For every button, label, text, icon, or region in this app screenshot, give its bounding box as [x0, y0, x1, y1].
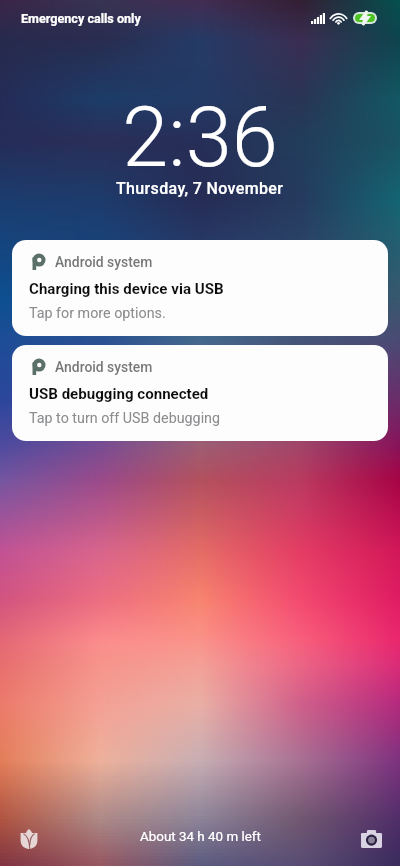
staticText: Charging this device via USB — [29, 280, 224, 298]
staticText: USB debugging connected — [29, 385, 209, 403]
button[interactable]: Camera — [351, 819, 391, 859]
button[interactable]: Android system — [12, 345, 388, 441]
staticText: Thursday, 7 November — [116, 179, 284, 198]
staticText: Tap to turn off USB debugging — [29, 410, 221, 427]
button[interactable]: Android system — [12, 240, 388, 336]
staticText: About 34 h 40 m left — [140, 829, 261, 845]
staticText: Android system — [55, 359, 153, 375]
staticText: Emergency calls only — [21, 11, 141, 26]
staticText: 2:36 — [122, 89, 278, 186]
staticText: Android system — [55, 254, 153, 270]
staticText: Tap for more options. — [29, 305, 166, 322]
button[interactable]: Flashlight — [9, 819, 49, 859]
